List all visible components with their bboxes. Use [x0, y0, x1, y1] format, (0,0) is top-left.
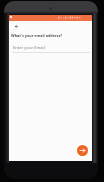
staticText: What's your email address?: [11, 33, 63, 38]
button[interactable]: Back: [10, 20, 22, 32]
button[interactable]: Next: [77, 145, 88, 156]
staticText: Enter your Email: [13, 45, 45, 51]
